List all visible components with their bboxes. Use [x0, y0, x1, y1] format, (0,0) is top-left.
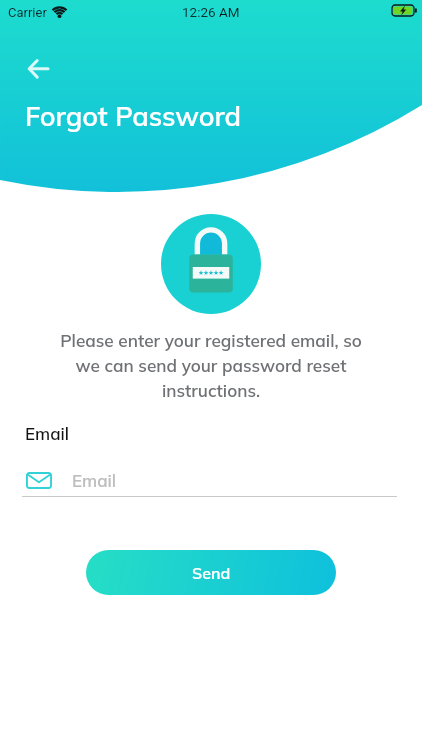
- staticText: Carrier: [8, 5, 47, 20]
- staticText: Forgot Password: [25, 99, 242, 133]
- button[interactable]: Send: [86, 550, 336, 595]
- staticText: Email: [25, 423, 70, 444]
- staticText: Email: [72, 470, 117, 491]
- button[interactable]: Email: [22, 460, 397, 500]
- staticText: Send: [192, 563, 231, 583]
- staticText: 12:26 AM: [182, 4, 240, 20]
- button[interactable]: Back: [14, 49, 54, 89]
- staticText: Please enter your registered email, so w…: [54, 330, 368, 402]
